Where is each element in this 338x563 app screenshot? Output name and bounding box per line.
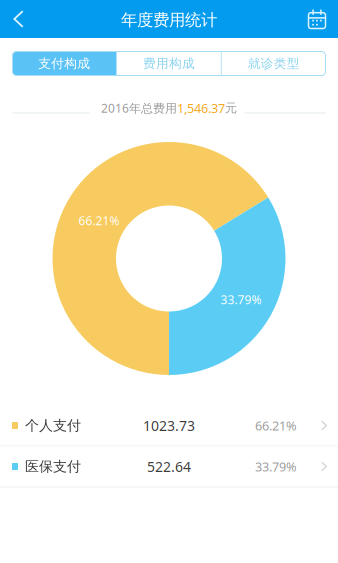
staticText: 支付构成 [38,55,90,71]
staticText: 1,546.37 [177,99,225,117]
staticText: 费用构成 [143,55,195,71]
staticText: 33.79% [220,291,261,308]
staticText: 就诊类型 [248,55,300,71]
staticText: 66.21% [255,417,297,434]
staticText: 66.21% [78,212,119,229]
staticText: 33.79% [255,458,297,475]
button[interactable]: 费用构成 [117,51,221,75]
button[interactable]: 就诊类型 [222,51,325,75]
staticText: 元 [225,100,237,115]
staticText: 522.64 [147,457,191,476]
staticText: 个人支付 [25,417,81,434]
staticText: 2016年总费用 [101,100,177,116]
button[interactable]: Back [0,0,37,38]
staticText: 1023.73 [143,416,195,435]
button[interactable]: Select period [296,0,338,38]
staticText: 年度费用统计 [121,10,217,30]
staticText: 医保支付 [25,458,81,475]
button[interactable]: 支付构成 [12,51,116,75]
button[interactable]: 个人支付 [0,405,338,445]
button[interactable]: 医保支付 [0,446,338,486]
